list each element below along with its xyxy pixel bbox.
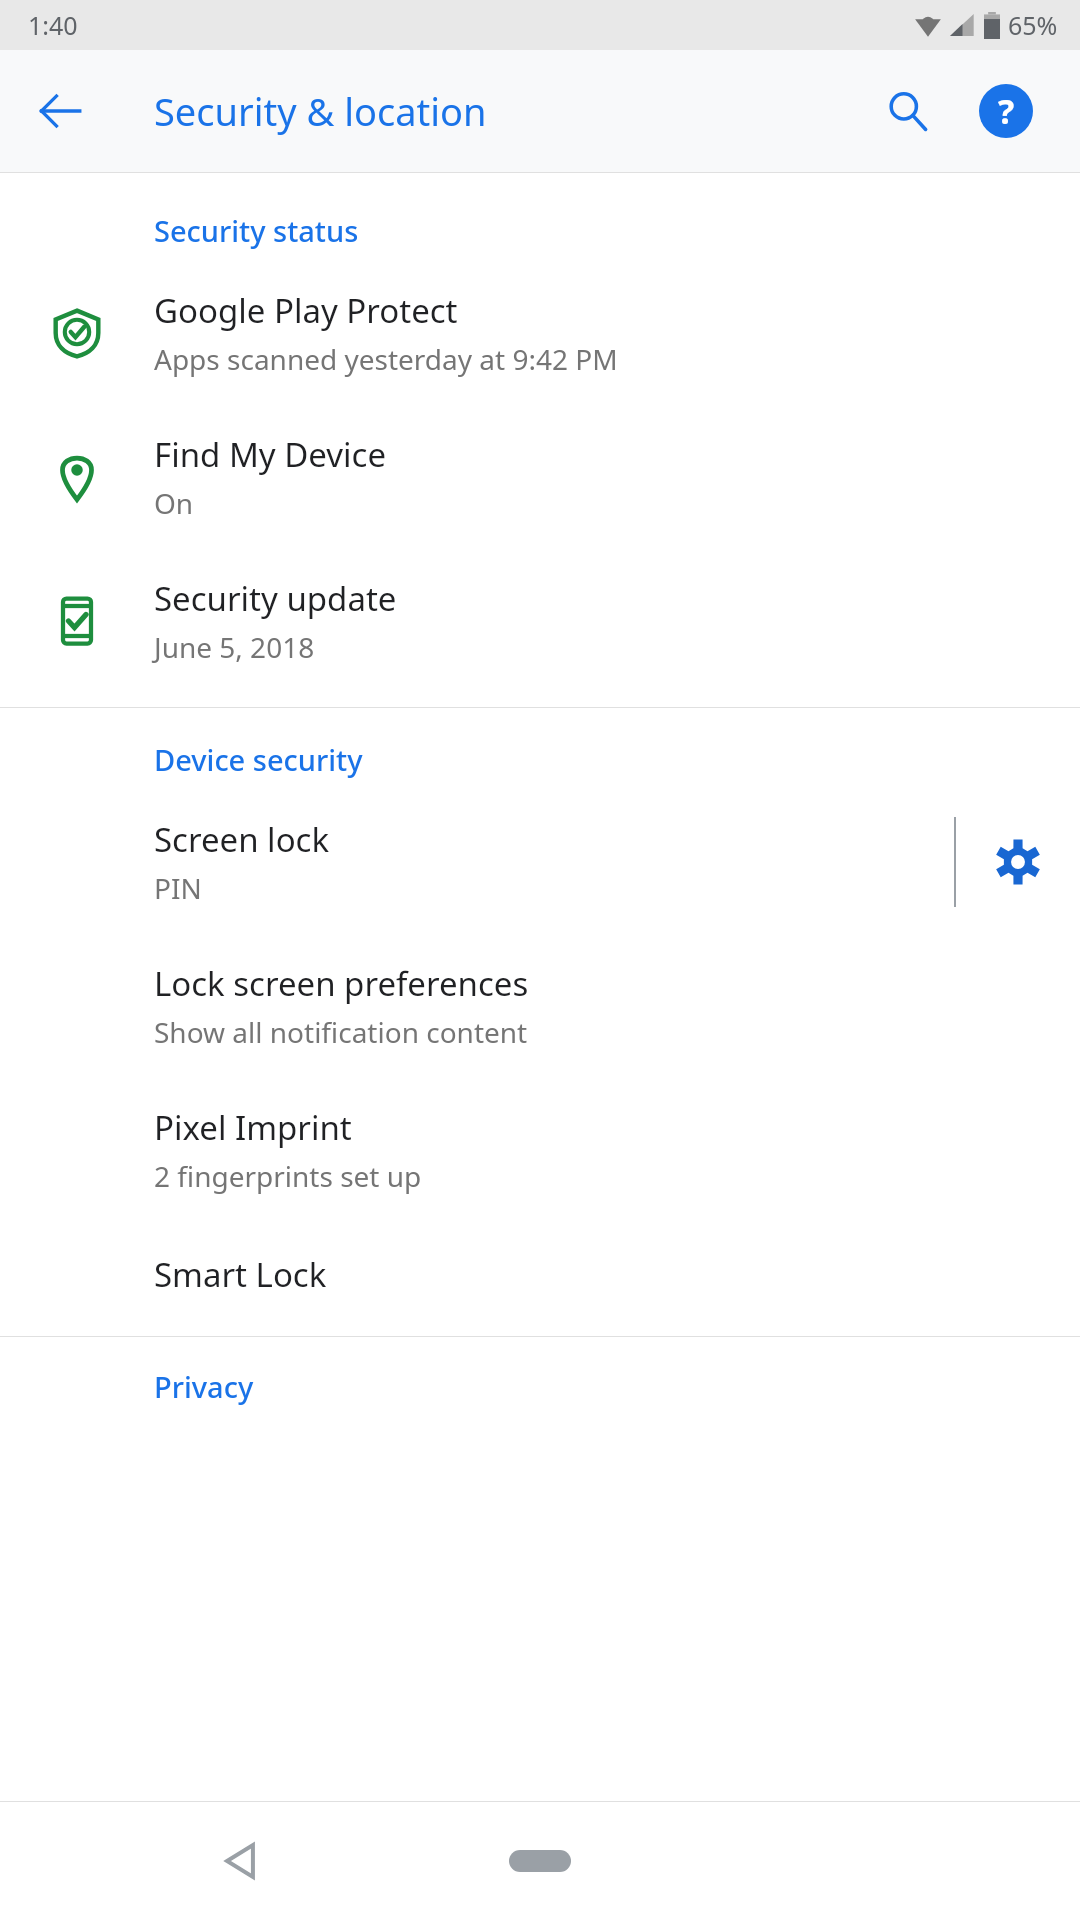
button[interactable]: Help: [968, 73, 1044, 149]
staticText: June 5, 2018: [154, 628, 315, 666]
staticText: Screen lock: [154, 817, 330, 862]
staticText: 1:40: [28, 8, 78, 42]
button[interactable]: Security update: [0, 549, 1080, 693]
button[interactable]: Find My Device: [0, 405, 1080, 549]
staticText: Security & location: [154, 85, 487, 137]
staticText: Lock screen preferences: [154, 961, 529, 1006]
staticText: Security status: [154, 211, 359, 250]
staticText: Privacy: [154, 1367, 254, 1406]
button[interactable]: Screen lock: [0, 790, 1080, 934]
staticText: Device security: [154, 740, 363, 779]
button[interactable]: Screen lock settings: [956, 800, 1080, 924]
staticText: PIN: [154, 869, 202, 907]
button[interactable]: Search: [870, 73, 946, 149]
staticText: Apps scanned yesterday at 9:42 PM: [154, 340, 618, 378]
button[interactable]: Back: [22, 73, 98, 149]
button[interactable]: Back: [180, 1802, 300, 1920]
staticText: Smart Lock: [154, 1252, 327, 1297]
staticText: Google Play Protect: [154, 288, 458, 333]
staticText: Security update: [154, 576, 397, 621]
button[interactable]: Home: [480, 1802, 600, 1920]
button[interactable]: Lock screen preferences: [0, 934, 1080, 1078]
staticText: 2 fingerprints set up: [154, 1157, 422, 1195]
staticText: 65%: [1008, 8, 1058, 42]
button[interactable]: Google Play Protect: [0, 261, 1080, 405]
button[interactable]: Pixel Imprint: [0, 1078, 1080, 1222]
staticText: Find My Device: [154, 432, 387, 477]
staticText: ?: [998, 88, 1015, 134]
staticText: Show all notification content: [154, 1013, 528, 1051]
staticText: On: [154, 484, 194, 522]
staticText: Pixel Imprint: [154, 1105, 352, 1150]
button[interactable]: Smart Lock: [0, 1222, 1080, 1326]
